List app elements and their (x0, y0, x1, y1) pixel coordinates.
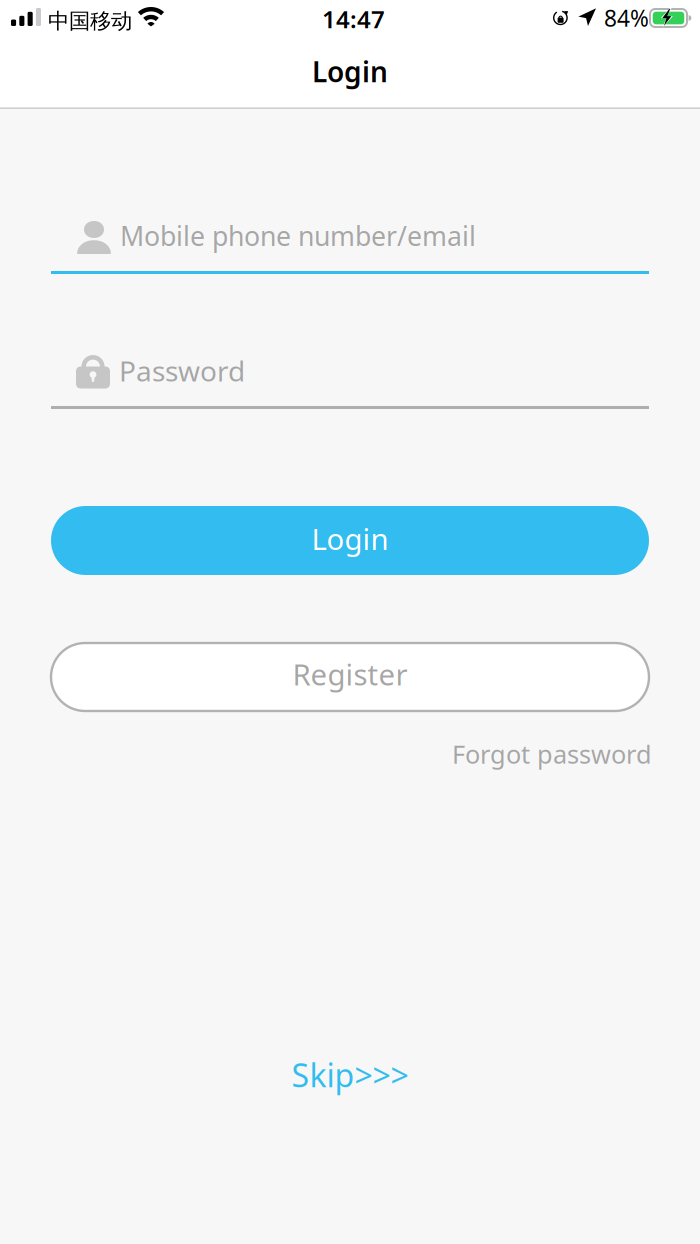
button[interactable]: Login (51, 506, 649, 575)
staticText: 中国移动 (48, 8, 132, 34)
staticText: Mobile phone number/email (120, 218, 476, 253)
button[interactable]: Mobile phone number/email (51, 220, 649, 274)
button[interactable]: Forgot password (449, 737, 649, 771)
button[interactable]: Skip>>> (291, 1053, 408, 1096)
staticText: Login (311, 519, 388, 558)
staticText: Login (312, 53, 388, 90)
button[interactable]: Register (51, 643, 649, 711)
staticText: Skip>>> (291, 1053, 408, 1096)
staticText: 14:47 (322, 3, 385, 35)
button[interactable]: Password (51, 356, 649, 409)
staticText: Register (292, 654, 407, 693)
staticText: Forgot password (452, 737, 652, 771)
staticText: 84% (604, 3, 649, 33)
staticText: Password (119, 352, 245, 389)
